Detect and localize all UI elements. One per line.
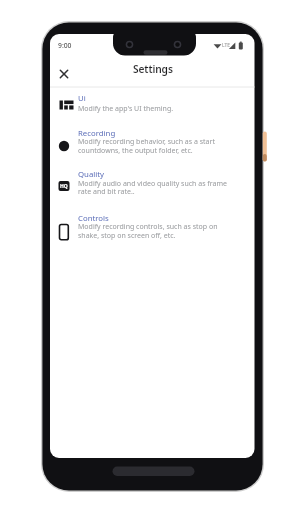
staticText: Quality <box>78 169 105 180</box>
staticText: shake, stop on screen off, etc. <box>78 231 176 241</box>
button[interactable] <box>54 64 74 84</box>
staticText: countdowns, the output folder, etc. <box>78 146 193 156</box>
staticText: Settings <box>133 62 173 76</box>
button[interactable]: Quality <box>50 168 254 211</box>
staticText: Ui <box>78 93 86 104</box>
staticText: HQ <box>60 183 68 190</box>
staticText: 9:00 <box>58 41 72 50</box>
staticText: LTE <box>222 42 230 49</box>
staticText: Recording <box>78 128 116 139</box>
staticText: Controls <box>78 213 109 224</box>
staticText: Modify audio and video quality such as f… <box>78 179 227 189</box>
button[interactable]: Recording <box>50 126 254 168</box>
staticText: Modify recording behavior, such as a sta… <box>78 137 215 147</box>
staticText: rate and bit rate.. <box>78 187 135 197</box>
staticText: Modify recording controls, such as stop … <box>78 222 218 232</box>
button[interactable]: Ui <box>50 92 254 126</box>
staticText: Modify the app's UI theming. <box>78 104 174 114</box>
button[interactable]: Controls <box>50 211 254 254</box>
